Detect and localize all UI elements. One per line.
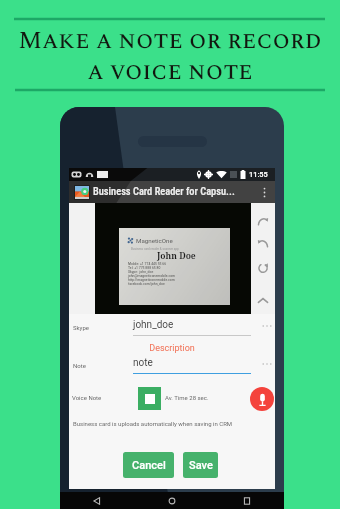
staticText: Business card is uploads automatically w… xyxy=(73,420,233,427)
staticText: john_doe xyxy=(133,319,174,331)
staticText: http://magneticonemobile.com xyxy=(128,278,175,282)
button[interactable]: Rotate xyxy=(254,259,272,277)
staticText: John Doe xyxy=(157,250,196,262)
staticText: Business card reader & scanner app xyxy=(131,247,179,251)
staticText: Av. Time 28 sec. xyxy=(165,394,209,401)
staticText: note xyxy=(133,357,153,369)
button[interactable]: Stop recording xyxy=(138,387,161,410)
button[interactable]: Back xyxy=(86,492,108,509)
button[interactable]: Skype xyxy=(69,317,275,339)
staticText: Mobile: +1 774 445 55 66 xyxy=(128,262,167,266)
staticText: Business Card Reader for Capsu... xyxy=(93,185,235,197)
staticText: Skype: john_doe xyxy=(128,270,154,274)
staticText: Note xyxy=(73,362,86,369)
staticText: Make a note or record a voice note xyxy=(0,22,340,90)
button[interactable]: Home xyxy=(161,492,183,509)
staticText: Description xyxy=(69,343,275,354)
staticText: Save xyxy=(189,459,213,472)
staticText: Tel: +1 775 888 65 80 xyxy=(128,266,161,270)
button[interactable]: Recent apps xyxy=(236,492,258,509)
staticText: Cancel xyxy=(132,459,166,472)
button[interactable]: Redo xyxy=(254,212,272,230)
button[interactable]: Collapse xyxy=(254,292,272,310)
staticText: facebook.com/john_doe xyxy=(128,282,165,286)
button[interactable]: Note xyxy=(69,355,275,377)
button[interactable]: Undo xyxy=(254,234,272,252)
staticText: 11:55 xyxy=(249,170,268,179)
button[interactable]: Business Card Reader for Capsu... xyxy=(69,181,275,203)
button[interactable]: Cancel xyxy=(123,452,174,478)
staticText: Skype xyxy=(73,324,89,331)
button[interactable]: More options xyxy=(255,181,273,203)
staticText: john@magneticonemobile.com xyxy=(128,274,176,278)
button[interactable]: Save xyxy=(183,452,218,478)
staticText: MagneticOne xyxy=(136,237,173,244)
button[interactable]: Record voice note xyxy=(250,387,274,411)
staticText: Voice Note xyxy=(72,394,102,401)
